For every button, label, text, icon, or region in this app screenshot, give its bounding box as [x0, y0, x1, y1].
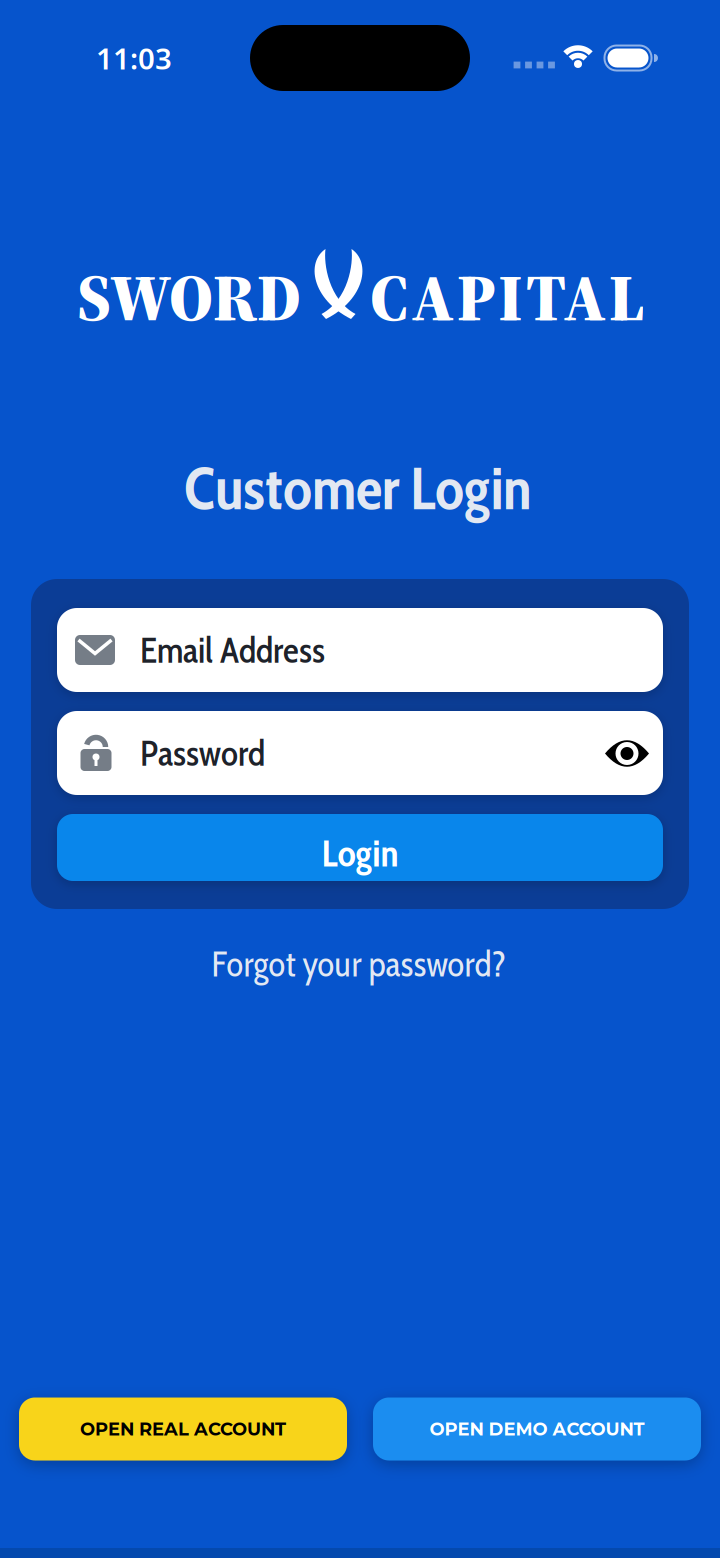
staticText: Email Address	[140, 628, 325, 671]
staticText: Forgot your password?	[211, 943, 506, 985]
staticText: Password	[140, 731, 265, 774]
staticText: 11:03	[96, 38, 172, 77]
staticText: OPEN REAL ACCOUNT	[80, 1418, 286, 1440]
staticText: Login	[321, 830, 398, 876]
staticText: CAPITAL	[370, 251, 644, 343]
staticText: OPEN DEMO ACCOUNT	[429, 1418, 644, 1440]
staticText: SWORD	[77, 251, 301, 343]
staticText: Customer Login	[184, 452, 532, 524]
